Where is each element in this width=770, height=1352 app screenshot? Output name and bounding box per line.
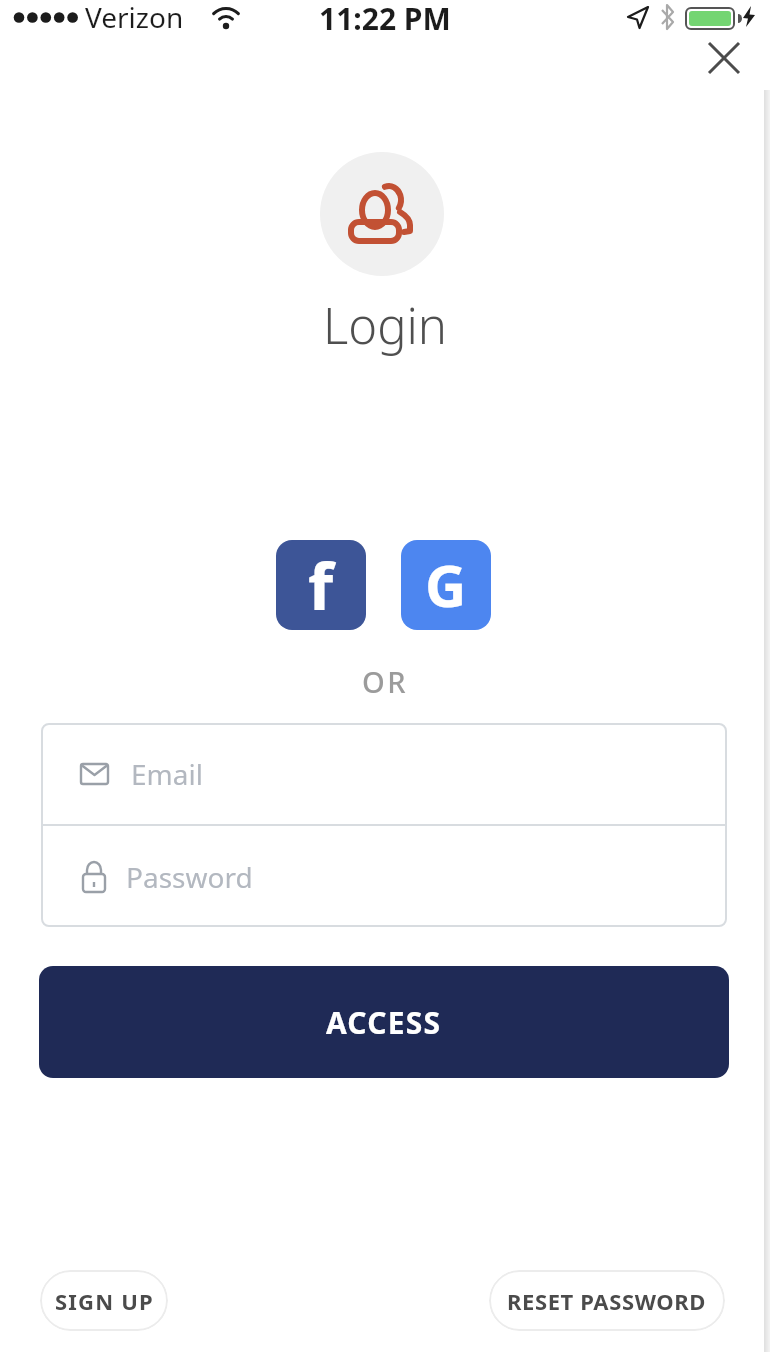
- button[interactable]: SIGN UP: [40, 1270, 168, 1331]
- button[interactable]: ACCESS: [39, 966, 729, 1078]
- button[interactable]: RESET PASSWORD: [489, 1270, 725, 1331]
- button[interactable]: f: [276, 540, 366, 630]
- button[interactable]: G: [401, 540, 491, 630]
- staticText: Login: [323, 292, 448, 359]
- staticText: 11:22 PM: [319, 0, 451, 39]
- staticText: Password: [126, 858, 253, 896]
- staticText: RESET PASSWORD: [507, 1286, 707, 1316]
- staticText: ACCESS: [326, 1002, 442, 1043]
- staticText: Email: [131, 755, 203, 793]
- button[interactable]: [698, 32, 750, 84]
- staticText: f: [308, 541, 334, 630]
- staticText: G: [425, 546, 467, 624]
- button[interactable]: Email: [41, 723, 727, 824]
- staticText: OR: [362, 662, 409, 701]
- staticText: Verizon: [85, 0, 184, 36]
- button[interactable]: Password: [41, 826, 727, 927]
- staticText: SIGN UP: [55, 1286, 154, 1316]
